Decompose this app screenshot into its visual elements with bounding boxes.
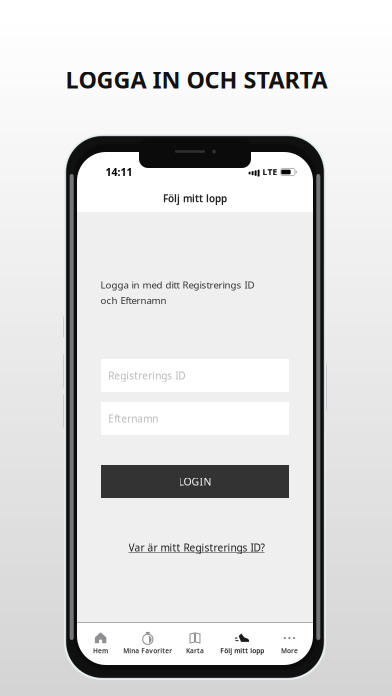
staticText: Hem xyxy=(93,646,108,655)
staticText: Efternamn xyxy=(108,412,158,425)
button[interactable]: More xyxy=(266,622,313,665)
button[interactable]: LOGIN xyxy=(101,465,289,498)
staticText: Var är mitt Registrerings ID? xyxy=(128,541,264,554)
button[interactable]: Följ mitt lopp xyxy=(219,622,266,665)
staticText: More xyxy=(281,646,298,655)
staticText: Mina Favoriter xyxy=(123,646,172,655)
button[interactable]: Karta xyxy=(171,622,219,665)
staticText: Följ mitt lopp xyxy=(163,192,227,205)
staticText: Följ mitt lopp xyxy=(220,646,264,655)
staticText: och Efternamn xyxy=(100,294,166,307)
staticText: LOGGA IN OCH STARTA xyxy=(65,64,327,95)
button[interactable]: Var är mitt Registrerings ID? xyxy=(125,538,267,557)
button[interactable]: Mina Favoriter xyxy=(124,622,171,665)
staticText: LOGIN xyxy=(178,474,211,489)
staticText: Logga in med ditt Registrerings ID xyxy=(100,278,254,291)
button[interactable]: Hem xyxy=(77,622,124,665)
staticText: Registrerings ID xyxy=(108,369,185,382)
staticText: 14:11 xyxy=(106,165,133,179)
staticText: Karta xyxy=(186,646,204,655)
staticText: LTE xyxy=(262,166,277,178)
